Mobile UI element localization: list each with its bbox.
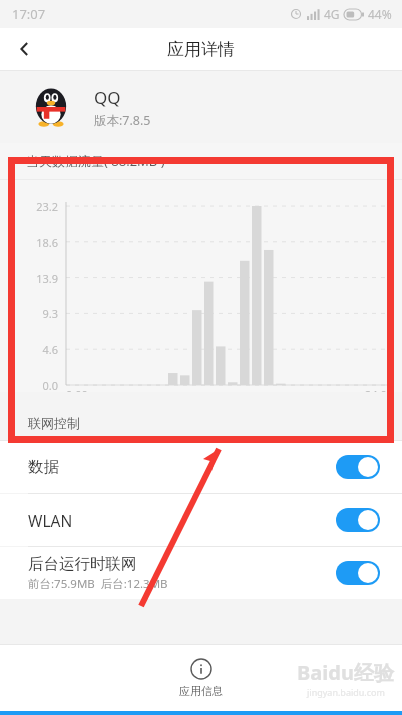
button[interactable]: 当天数据流量( 88.2MB ) [0,143,402,179]
staticText: QQ [94,86,121,109]
button[interactable]: 数据 [0,441,402,493]
staticText: 联网控制 [28,415,80,431]
button[interactable]: 返回 [0,28,50,70]
staticText: 17:07 [12,5,46,23]
other: 应用信息 [190,658,212,680]
staticText: 23.2 [0,199,58,214]
other: 展开 [362,154,376,168]
other: 数据 [336,455,380,479]
other: 后台运行时联网 [336,561,380,585]
staticText: 版本:7.8.5 [94,112,151,129]
staticText: 18.6 [0,235,58,250]
staticText: WLAN [28,510,73,531]
staticText: 4.6 [0,342,58,357]
staticText: 4G [324,6,340,22]
staticText: 0:00 [66,387,88,392]
staticText: 13.9 [0,271,58,286]
staticText: 44% [368,6,392,22]
staticText: 9.3 [0,306,58,321]
staticText: 应用详情 [167,39,235,60]
staticText: 应用信息 [179,684,223,698]
staticText: 当天数据流量( 88.2MB ) [26,152,165,170]
staticText: 24:00 [365,387,394,392]
staticText: Baidu经验 [297,659,394,686]
button[interactable]: 应用信息 [157,652,245,704]
staticText: 数据 [28,457,59,477]
button[interactable]: 后台运行时联网 [0,547,402,599]
staticText: 后台运行时联网 [28,554,137,574]
other: WLAN [336,508,380,532]
button[interactable]: WLAN [0,494,402,546]
staticText: 0.0 [0,378,58,392]
staticText: 前台:75.9MB 后台:12.3MB [28,576,168,592]
staticText: jingyan.baidu.com [307,686,385,698]
